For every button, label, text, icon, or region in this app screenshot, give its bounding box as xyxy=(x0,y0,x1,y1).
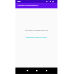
button[interactable]: Recent apps xyxy=(43,67,50,74)
staticText: BROWSE COLLECTION xyxy=(26,36,47,39)
button[interactable]: Back xyxy=(24,67,30,74)
staticText: 9:30 xyxy=(17,1,20,2)
button[interactable]: BROWSE COLLECTION xyxy=(25,36,48,39)
button[interactable]: Home xyxy=(34,67,40,74)
staticText: You have no saved items yet xyxy=(25,29,48,32)
staticText: Saved Collections xyxy=(18,3,38,6)
